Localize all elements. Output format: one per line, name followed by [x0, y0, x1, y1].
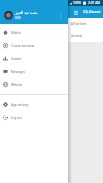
staticText: Messages: [11, 70, 25, 74]
staticText: 100%: [73, 1, 82, 5]
button[interactable]: Messages: [0, 65, 68, 78]
staticText: iQ-Guest Course: [83, 9, 103, 15]
button[interactable]: App settings: [0, 98, 68, 111]
button[interactable]: Course overview: [0, 39, 68, 52]
staticText: Mobile: [11, 31, 21, 35]
button[interactable]: Website: [0, 78, 68, 91]
staticText: LMS: [15, 16, 21, 20]
button[interactable]: General: [0, 30, 103, 42]
staticText: Grades: [11, 57, 22, 61]
staticText: General: [71, 34, 83, 38]
button[interactable]: Log out: [0, 111, 68, 124]
button[interactable]: Open navigation drawer: [71, 7, 81, 17]
button[interactable]: Grades: [0, 52, 68, 65]
staticText: Course overview: [11, 44, 35, 48]
staticText: All sections: [71, 22, 87, 26]
button[interactable]: All sections: [0, 18, 103, 30]
staticText: محمد عبد العزيز: [15, 10, 38, 15]
button[interactable]: Mobile: [0, 26, 68, 39]
staticText: App settings: [11, 103, 29, 107]
staticText: Log out: [11, 116, 22, 120]
staticText: 2:07 AM: [88, 1, 101, 5]
staticText: Website: [11, 83, 23, 87]
